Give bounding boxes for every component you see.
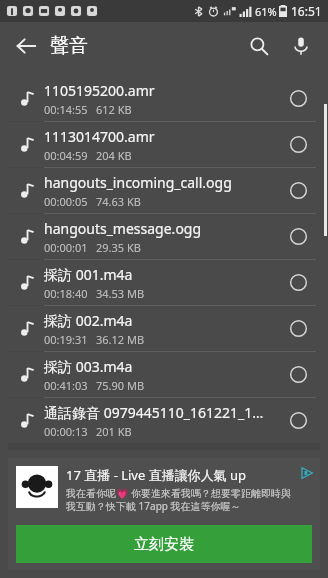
- button[interactable]: Select 採訪 001.m4a: [276, 260, 320, 305]
- staticText: 00:00:05: [44, 194, 88, 209]
- staticText: 204 KB: [96, 148, 132, 163]
- staticText: 00:18:40: [44, 286, 88, 301]
- button[interactable]: 採訪 003.m4a: [8, 352, 320, 397]
- button[interactable]: 通話錄音 0979445110_161221_123…: [8, 398, 320, 443]
- button[interactable]: Back: [6, 26, 46, 66]
- staticText: 立刻安裝: [134, 535, 194, 554]
- staticText: 採訪 002.m4a: [44, 311, 133, 330]
- staticText: 36.12 MB: [96, 332, 145, 347]
- staticText: 16:51: [291, 3, 322, 19]
- button[interactable]: Select 採訪 003.m4a: [276, 352, 320, 397]
- button[interactable]: Select 1113014700.amr: [276, 122, 320, 167]
- button[interactable]: Select hangouts_message.ogg: [276, 214, 320, 259]
- staticText: 201 KB: [96, 424, 132, 439]
- staticText: 74.63 KB: [96, 194, 141, 209]
- staticText: 我在看你呢💗 你要進來看我嗎？想要零距離即時與我互動？快下載 17app 我在這…: [66, 486, 298, 513]
- button[interactable]: Select hangouts_incoming_call.ogg: [276, 168, 320, 213]
- staticText: 00:14:55: [44, 102, 88, 117]
- staticText: hangouts_message.ogg: [44, 219, 202, 238]
- button[interactable]: 採訪 001.m4a: [8, 260, 320, 305]
- button[interactable]: Voice search: [280, 25, 322, 67]
- button[interactable]: 立刻安裝: [16, 525, 312, 563]
- staticText: 61%: [255, 4, 277, 19]
- button[interactable]: Select 採訪 002.m4a: [276, 306, 320, 351]
- staticText: 612 KB: [96, 102, 132, 117]
- staticText: 00:41:03: [44, 378, 88, 393]
- button[interactable]: 17 直播 - Live 直播讓你人氣 up: [8, 458, 320, 570]
- button[interactable]: hangouts_incoming_call.ogg: [8, 168, 320, 213]
- staticText: 75.90 MB: [96, 378, 145, 393]
- button[interactable]: Search: [238, 25, 280, 67]
- staticText: 00:04:59: [44, 148, 88, 163]
- staticText: 17 直播 - Live 直播讓你人氣 up: [66, 466, 247, 484]
- staticText: 29.35 KB: [96, 240, 141, 255]
- staticText: 34.53 MB: [96, 286, 145, 301]
- staticText: 00:00:01: [44, 240, 88, 255]
- staticText: 採訪 003.m4a: [44, 357, 133, 376]
- staticText: 00:00:13: [44, 424, 88, 439]
- button[interactable]: 採訪 002.m4a: [8, 306, 320, 351]
- button[interactable]: Select 1105195200.amr: [276, 76, 320, 121]
- button[interactable]: 1113014700.amr: [8, 122, 320, 167]
- staticText: 1105195200.amr: [44, 81, 155, 100]
- staticText: 採訪 001.m4a: [44, 265, 133, 284]
- staticText: 通話錄音 0979445110_161221_123…: [44, 403, 270, 422]
- other: Ad choices: [300, 466, 314, 480]
- button[interactable]: Select 通話錄音 0979445110_161221_123…: [276, 398, 320, 443]
- button[interactable]: 1105195200.amr: [8, 76, 320, 121]
- button[interactable]: hangouts_message.ogg: [8, 214, 320, 259]
- staticText: 00:19:31: [44, 332, 88, 347]
- staticText: 1113014700.amr: [44, 127, 155, 146]
- staticText: hangouts_incoming_call.ogg: [44, 173, 232, 192]
- staticText: 聲音: [50, 34, 88, 58]
